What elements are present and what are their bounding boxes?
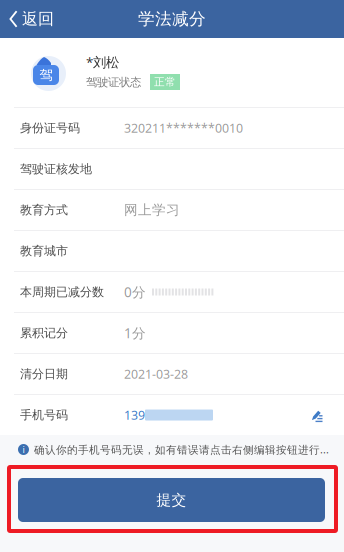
staticText: 清分日期: [20, 366, 68, 381]
staticText: 驾驶证核发地: [20, 161, 92, 176]
staticText: 正常: [154, 75, 176, 89]
staticText: 139: [124, 407, 145, 423]
staticText: 320211*******0010: [124, 120, 243, 136]
staticText: 教育城市: [20, 243, 68, 258]
staticText: 教育方式: [20, 202, 68, 217]
button[interactable]: 返回: [0, 0, 64, 38]
staticText: 累积记分: [20, 325, 68, 340]
staticText: 0分: [124, 283, 146, 301]
staticText: 本周期已减分数: [20, 284, 104, 299]
button[interactable]: 提交: [18, 478, 325, 522]
button[interactable]: 编辑手机号码: [302, 400, 332, 430]
staticText: i: [22, 443, 24, 456]
staticText: 驾: [39, 67, 52, 83]
staticText: 身份证号码: [20, 120, 80, 135]
staticText: *刘松: [86, 53, 119, 71]
staticText: 驾驶证状态: [86, 75, 141, 89]
staticText: 1分: [124, 324, 146, 342]
staticText: 手机号码: [20, 407, 68, 422]
staticText: 2021-03-28: [124, 366, 188, 382]
staticText: 学法减分: [138, 8, 206, 29]
staticText: 提交: [156, 491, 186, 509]
staticText: 返回: [22, 9, 54, 29]
staticText: 确认你的手机号码无误，如有错误请点击右侧编辑按钮进行更改。: [34, 442, 334, 457]
staticText: 网上学习: [124, 201, 180, 218]
